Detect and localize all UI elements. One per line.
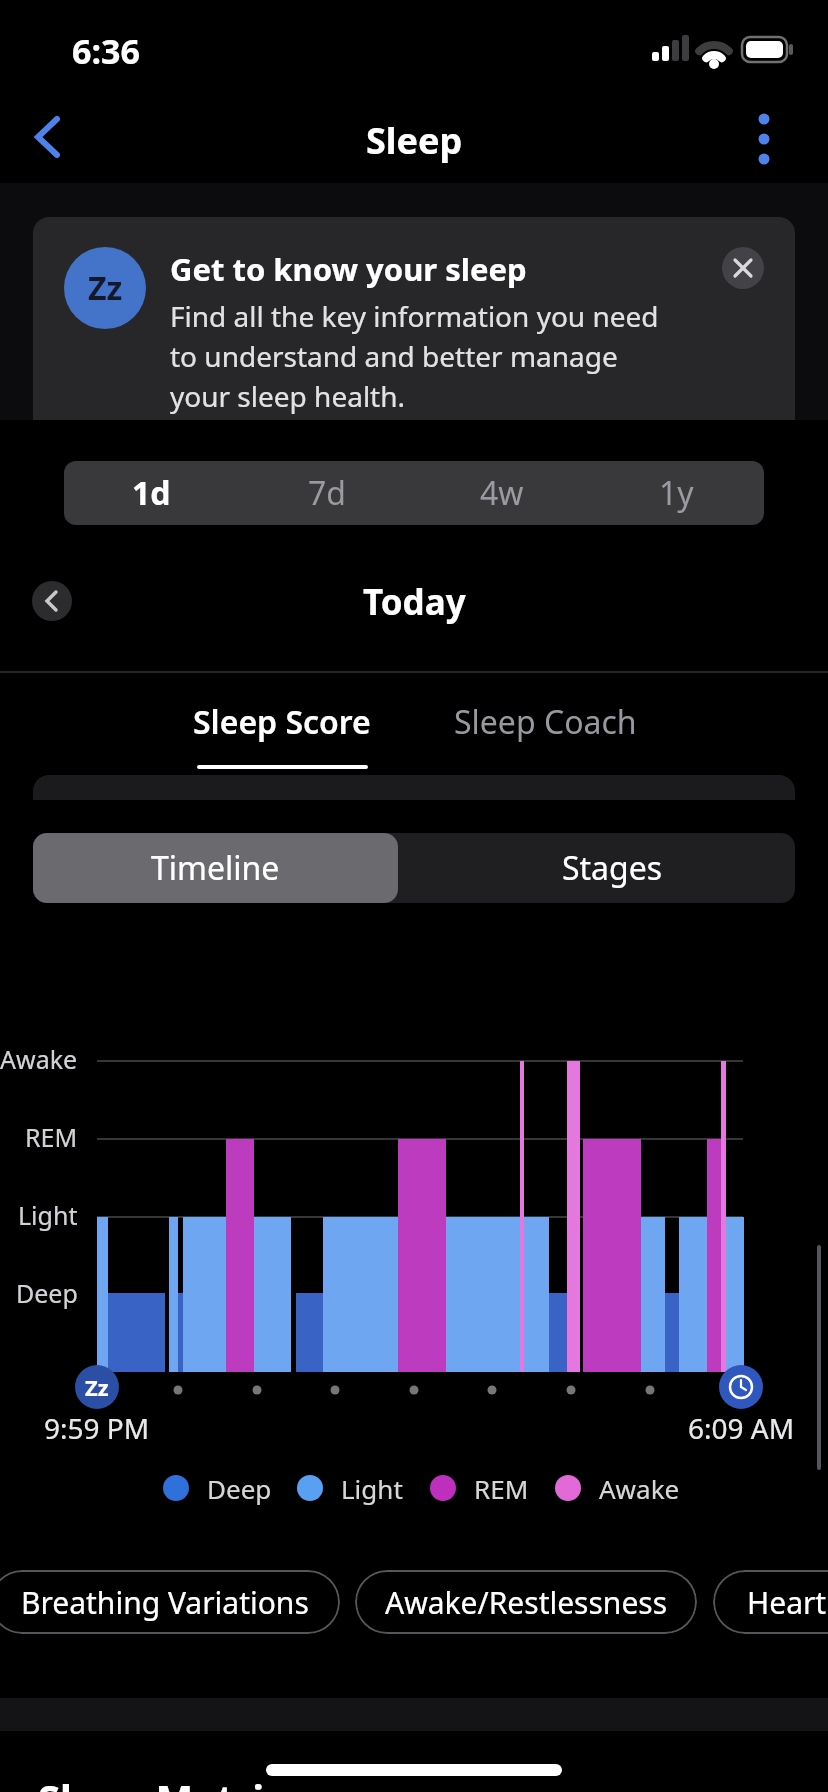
staticText: 9:59 PM <box>44 1409 150 1445</box>
staticText: 4w <box>480 471 524 515</box>
staticText: Deep <box>16 1276 78 1310</box>
staticText: REM <box>25 1120 78 1154</box>
button[interactable]: Sleep Coach <box>445 700 645 744</box>
button[interactable]: 1d <box>64 461 239 525</box>
button[interactable]: 1y <box>589 461 764 525</box>
button[interactable] <box>722 247 764 289</box>
staticText: Stages <box>562 846 663 890</box>
staticText: Sleep Score <box>193 700 371 744</box>
button[interactable] <box>32 581 72 621</box>
staticText: Awake <box>0 1042 78 1076</box>
staticText: Zz <box>85 1372 109 1402</box>
staticText: Light <box>341 1471 403 1506</box>
staticText: Zz <box>88 266 123 310</box>
button[interactable]: Stages <box>420 833 805 903</box>
staticText: Sleep <box>366 116 463 164</box>
staticText: to understand and better manage <box>170 337 618 375</box>
button[interactable]: Timeline <box>33 833 398 903</box>
staticText: Awake <box>599 1471 680 1506</box>
staticText: 1y <box>659 471 694 515</box>
staticText: 6:09 AM <box>688 1409 795 1445</box>
button[interactable] <box>33 217 795 420</box>
staticText: Deep <box>207 1471 272 1506</box>
staticText: Find all the key information you need <box>170 297 659 335</box>
staticText: 6:36 <box>72 28 140 72</box>
staticText: Timeline <box>151 846 280 890</box>
button[interactable]: 4w <box>414 461 589 525</box>
staticText: Get to know your sleep <box>170 248 527 290</box>
staticText: Sleep Coach <box>454 700 637 744</box>
staticText: Sleep Metrics <box>38 1771 305 1792</box>
staticText: 7d <box>308 471 346 515</box>
staticText: Breathing Variations <box>21 1582 309 1623</box>
button[interactable] <box>24 110 80 166</box>
staticText: your sleep health. <box>170 377 406 415</box>
staticText: 1d <box>132 471 171 515</box>
button[interactable]: Sleep Score <box>182 700 382 744</box>
button[interactable]: Heart Rate <box>713 1570 828 1634</box>
button[interactable]: Breathing Variations <box>0 1570 340 1634</box>
staticText: Heart Rate <box>747 1582 828 1623</box>
button[interactable] <box>738 110 790 166</box>
staticText: REM <box>474 1471 529 1506</box>
staticText: Today <box>363 578 466 626</box>
button[interactable]: Awake/Restlessness <box>355 1570 697 1634</box>
button[interactable]: 7d <box>239 461 414 525</box>
staticText: Light <box>18 1198 78 1232</box>
staticText: Awake/Restlessness <box>385 1582 668 1623</box>
